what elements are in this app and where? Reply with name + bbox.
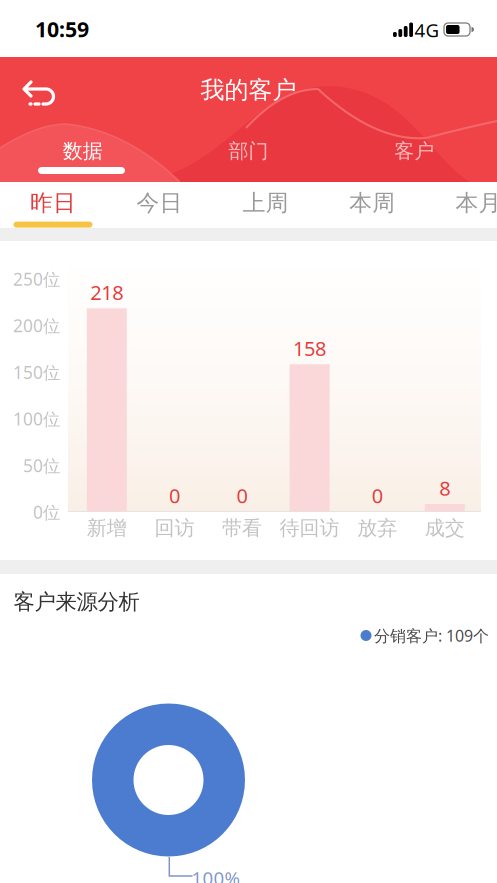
button[interactable]: 本周 xyxy=(322,183,422,223)
staticText: 我的客户 xyxy=(200,75,296,105)
button[interactable]: 今日 xyxy=(109,183,209,223)
button[interactable]: 客户 xyxy=(359,134,469,168)
button[interactable]: 本月 xyxy=(429,183,497,223)
button[interactable]: 数据 xyxy=(28,134,138,168)
staticText: 成交 xyxy=(425,516,465,540)
staticText: 200位 xyxy=(13,314,60,337)
staticText: 10:59 xyxy=(35,15,89,43)
staticText: 50位 xyxy=(23,454,60,477)
staticText: 数据 xyxy=(63,139,103,163)
staticText: 0 xyxy=(372,482,383,509)
staticText: 带看 xyxy=(222,516,262,540)
staticText: 0位 xyxy=(33,500,60,523)
staticText: 0 xyxy=(169,482,180,509)
staticText: 4G xyxy=(414,18,439,42)
staticText: 150位 xyxy=(13,361,60,384)
staticText: 218 xyxy=(90,279,123,306)
staticText: 250位 xyxy=(13,267,60,290)
staticText: 100% xyxy=(191,866,240,883)
staticText: 8 xyxy=(439,475,450,501)
staticText: 上周 xyxy=(243,189,289,217)
staticText: 分销客户: 109个 xyxy=(374,625,489,646)
staticText: 0 xyxy=(236,482,247,509)
staticText: 100位 xyxy=(13,407,60,430)
button[interactable]: 部门 xyxy=(193,134,303,168)
staticText: 客户来源分析 xyxy=(13,589,139,615)
button[interactable]: 返回 xyxy=(18,71,62,115)
button[interactable]: 昨日 xyxy=(3,183,103,223)
staticText: 昨日 xyxy=(30,189,76,217)
staticText: 今日 xyxy=(136,189,182,217)
staticText: 新增 xyxy=(87,516,127,540)
staticText: 回访 xyxy=(154,516,194,540)
staticText: 待回访 xyxy=(280,516,340,540)
staticText: 放弃 xyxy=(357,516,397,540)
staticText: 158 xyxy=(293,335,326,362)
staticText: 本月 xyxy=(456,189,497,217)
staticText: 客户 xyxy=(394,139,434,163)
button[interactable]: 上周 xyxy=(216,183,316,223)
staticText: 本周 xyxy=(349,189,395,217)
staticText: 部门 xyxy=(228,139,268,163)
